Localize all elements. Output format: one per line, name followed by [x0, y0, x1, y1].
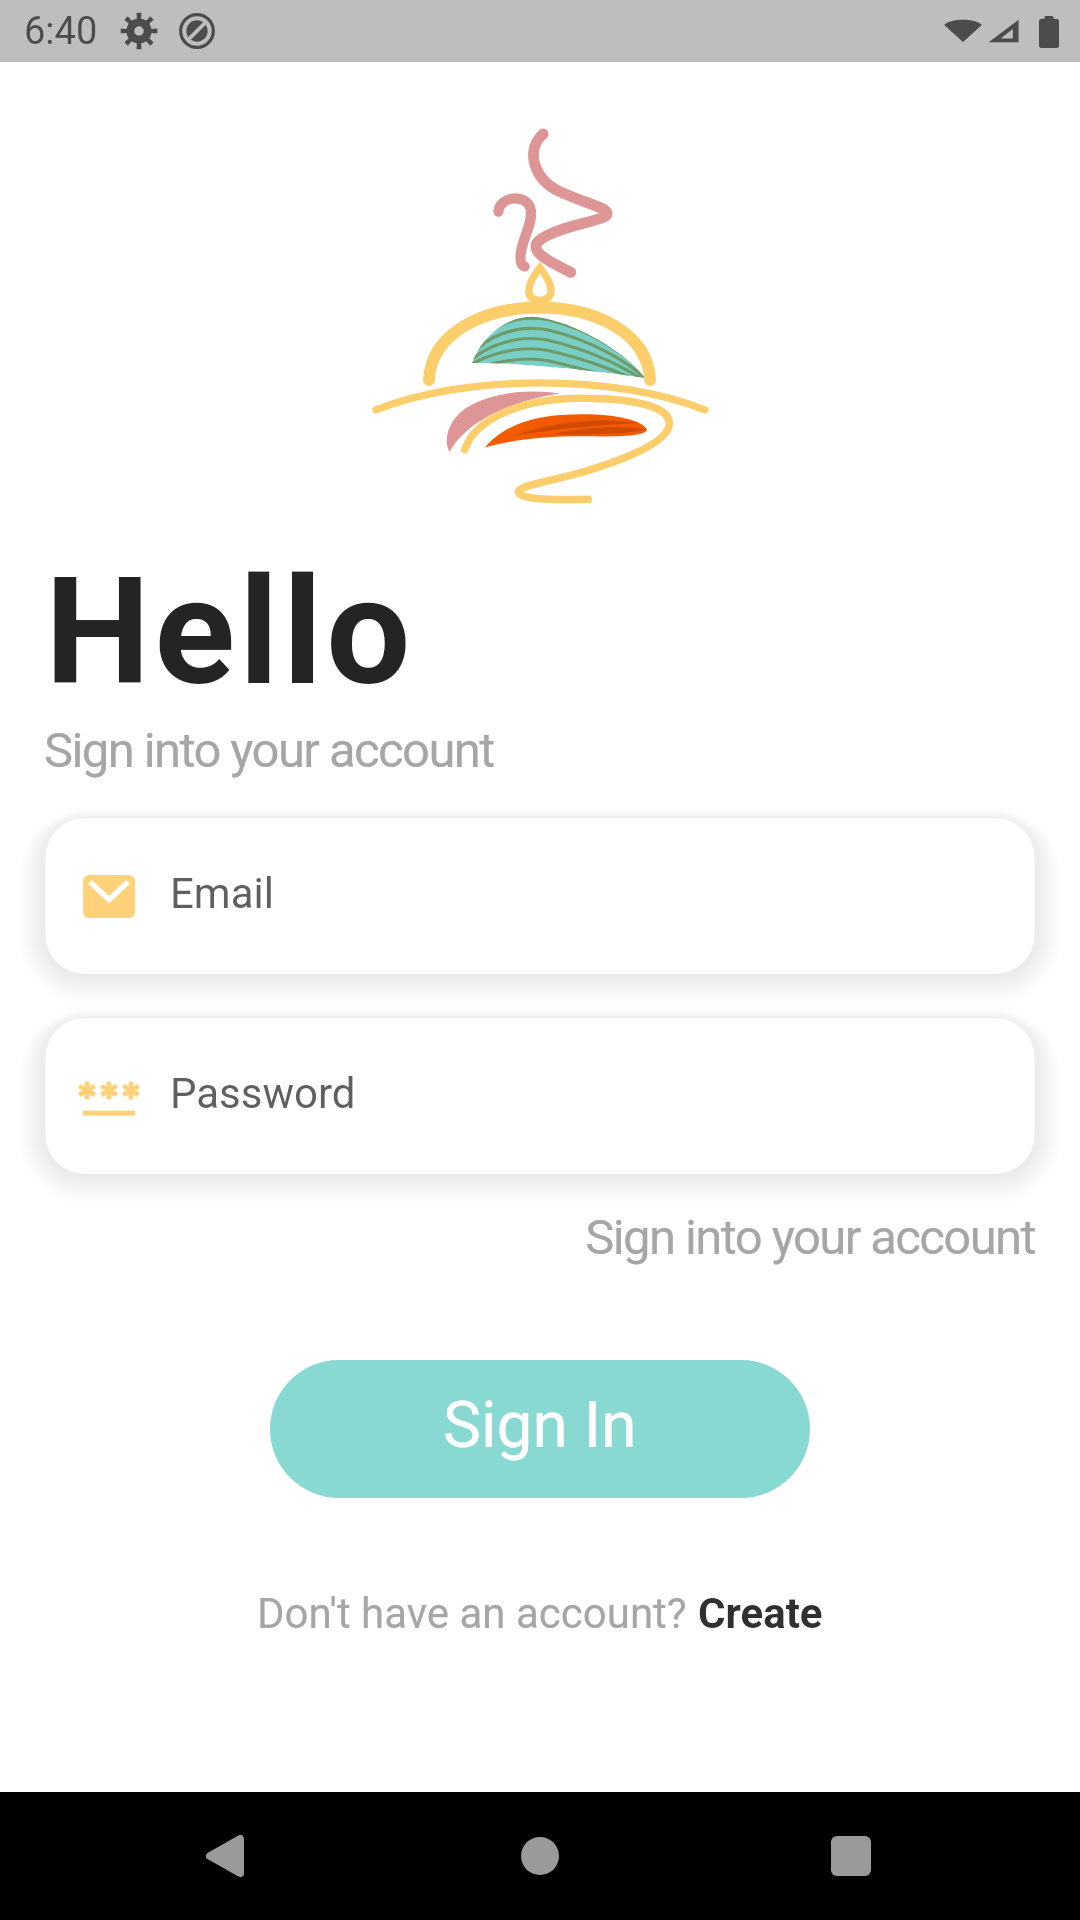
- staticText: Sign In: [443, 1388, 637, 1463]
- button[interactable]: Email: [45, 818, 1035, 974]
- button[interactable]: Recent apps: [791, 1796, 911, 1916]
- button[interactable]: Password: [45, 1018, 1035, 1174]
- staticText: Email: [170, 869, 274, 918]
- button[interactable]: Back: [165, 1796, 285, 1916]
- staticText: Sign into your account: [44, 722, 494, 779]
- staticText: Don't have an account?: [257, 1589, 698, 1638]
- staticText: 6:40: [24, 9, 98, 54]
- staticText: Hello: [45, 545, 415, 720]
- staticText: Password: [170, 1069, 356, 1118]
- staticText: Create: [698, 1589, 823, 1638]
- button[interactable]: Home: [480, 1796, 600, 1916]
- button[interactable]: Sign In: [270, 1360, 810, 1498]
- button[interactable]: Don't have an account?: [257, 1589, 823, 1638]
- button[interactable]: Sign into your account: [585, 1209, 1035, 1266]
